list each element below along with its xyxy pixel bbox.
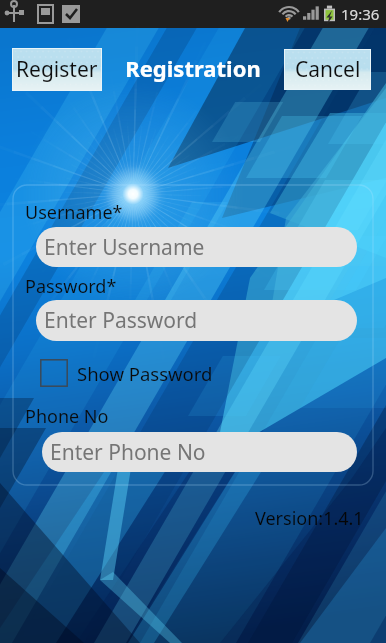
staticText: Register (16, 55, 98, 84)
staticText: Show Password (77, 361, 213, 386)
button[interactable]: Register (13, 49, 101, 90)
staticText: Cancel (295, 55, 361, 84)
staticText: Username* (25, 200, 123, 225)
button[interactable]: Enter Password (36, 300, 357, 341)
staticText: Enter Password (44, 306, 198, 335)
button[interactable]: Enter Phone No (42, 432, 357, 472)
staticText: Enter Username (44, 233, 205, 262)
button[interactable]: Enter Username (36, 227, 357, 267)
staticText: Registration (125, 53, 261, 83)
staticText: Password* (25, 274, 117, 299)
button[interactable]: Show Password checkbox (40, 358, 213, 388)
staticText: Phone No (25, 404, 109, 429)
other: Show Password checkbox (40, 359, 68, 387)
staticText: 19:36 (341, 4, 380, 24)
staticText: Version:1.4.1 (255, 506, 364, 531)
staticText: Enter Phone No (50, 438, 206, 467)
button[interactable]: Cancel (285, 50, 370, 89)
